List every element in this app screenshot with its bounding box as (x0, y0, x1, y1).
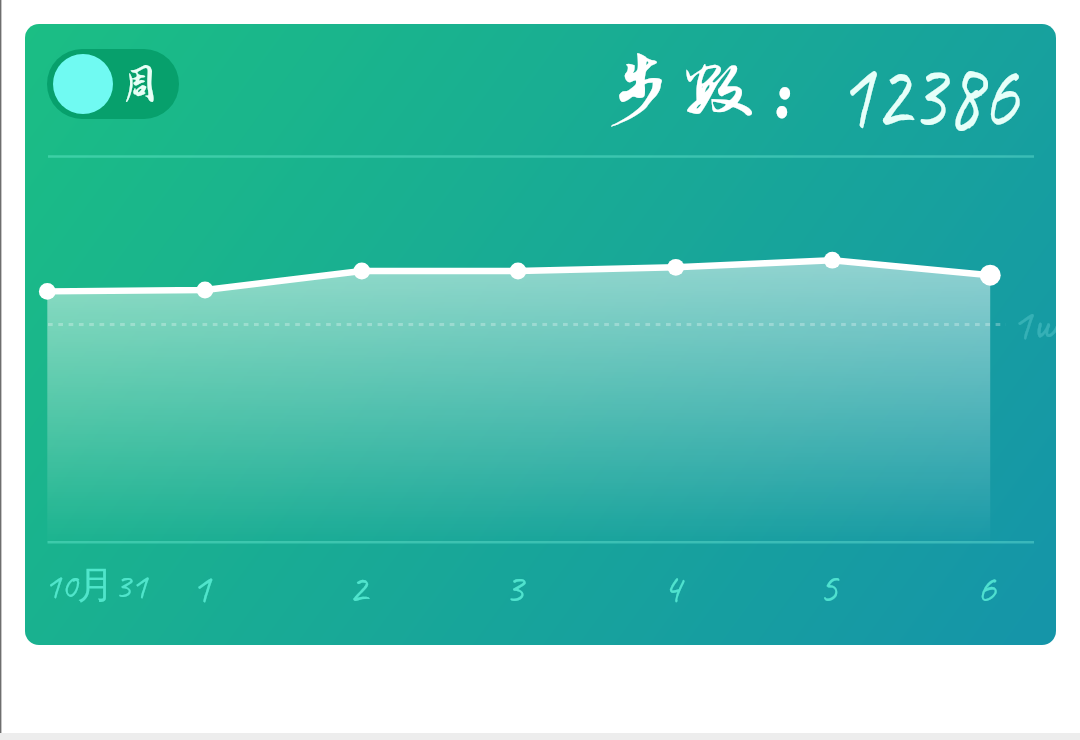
button[interactable]: Switch range: week (47, 49, 179, 119)
button[interactable]: Weekly step count chart, 12386 steps (0, 0, 1080, 740)
